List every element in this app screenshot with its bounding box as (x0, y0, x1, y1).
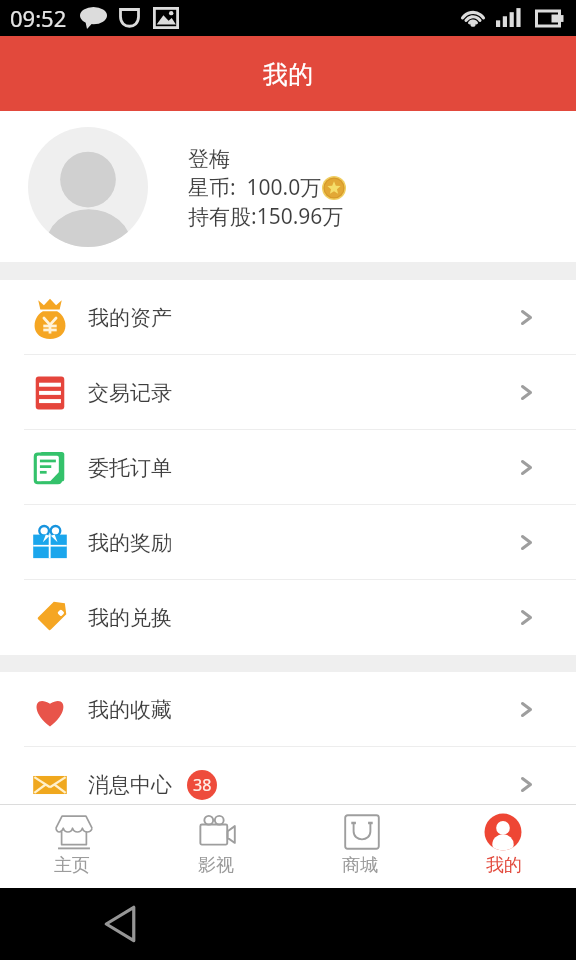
staticText: 38 (193, 774, 212, 796)
staticText: 主页 (54, 854, 90, 877)
staticText: 我的资产 (88, 305, 172, 331)
staticText: 委托订单 (88, 455, 172, 481)
button[interactable]: 我的奖励 (0, 505, 576, 580)
staticText: 交易记录 (88, 380, 172, 406)
button[interactable]: 登梅 (0, 111, 576, 262)
staticText: 持有股:150.96万 (188, 202, 344, 231)
button[interactable]: 委托订单 (0, 430, 576, 505)
button[interactable]: 主页 (0, 804, 144, 888)
staticText: 我的奖励 (88, 530, 172, 556)
button[interactable]: 我的 (432, 804, 576, 888)
button[interactable]: 我的兑换 (0, 580, 576, 655)
staticText: 我的兑换 (88, 605, 172, 631)
staticText: 09:52 (10, 3, 67, 33)
button[interactable]: 消息中心 (0, 747, 576, 822)
staticText: 我的 (263, 59, 313, 90)
button[interactable]: 影视 (144, 804, 288, 888)
staticText: 我的收藏 (88, 697, 172, 723)
button[interactable]: 交易记录 (0, 355, 576, 430)
staticText: 消息中心 (88, 772, 172, 798)
staticText: 商城 (342, 854, 378, 877)
staticText: 我的 (486, 854, 522, 877)
button[interactable]: 我的资产 (0, 280, 576, 355)
other: Back (104, 905, 136, 943)
staticText: 登梅 (188, 146, 230, 172)
button[interactable]: 商城 (288, 804, 432, 888)
button[interactable]: 我的收藏 (0, 672, 576, 747)
staticText: 星币: 100.0万 (188, 173, 322, 202)
staticText: 影视 (198, 854, 234, 877)
